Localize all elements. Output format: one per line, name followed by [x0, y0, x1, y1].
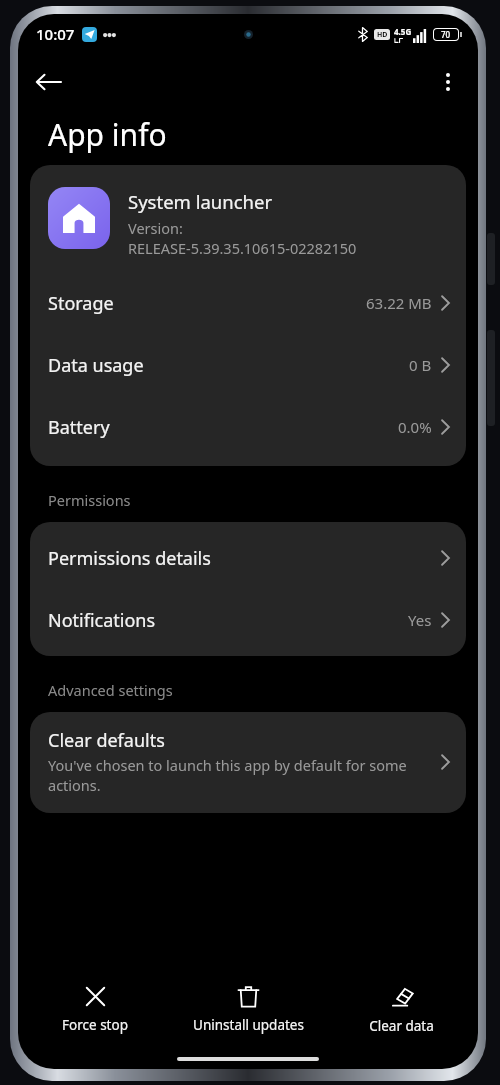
- button[interactable]: Back: [24, 58, 72, 106]
- staticText: Yes: [408, 610, 432, 630]
- button[interactable]: More options: [426, 60, 470, 104]
- button[interactable]: Data usage: [30, 334, 466, 396]
- staticText: Notifications: [48, 608, 156, 633]
- staticText: App info: [48, 114, 167, 155]
- staticText: 70: [441, 29, 451, 40]
- staticText: You've chosen to launch this app by defa…: [48, 755, 431, 795]
- button[interactable]: Uninstall updates: [172, 973, 325, 1045]
- button[interactable]: Clear defaults: [30, 712, 466, 813]
- staticText: Force stop: [62, 1016, 128, 1034]
- staticText: Clear defaults: [48, 728, 165, 753]
- staticText: System launcher: [128, 189, 273, 214]
- staticText: 63.22 MB: [366, 293, 432, 313]
- button[interactable]: Notifications: [30, 589, 466, 651]
- button[interactable]: Clear data: [325, 973, 478, 1045]
- button[interactable]: Force stop: [18, 973, 172, 1045]
- staticText: Uninstall updates: [193, 1016, 304, 1034]
- staticText: Permissions: [48, 490, 131, 510]
- staticText: Permissions details: [48, 546, 211, 571]
- staticText: 0 B: [409, 355, 432, 375]
- staticText: 4.5G: [394, 26, 412, 37]
- staticText: 10:07: [36, 24, 75, 44]
- staticText: Battery: [48, 415, 110, 440]
- button[interactable]: Permissions details: [30, 527, 466, 589]
- button[interactable]: Battery: [30, 396, 466, 458]
- staticText: 0.0%: [398, 417, 432, 437]
- button[interactable]: Storage: [30, 272, 466, 334]
- staticText: Storage: [48, 291, 114, 316]
- staticText: Data usage: [48, 353, 144, 378]
- staticText: Version:: [128, 218, 183, 238]
- staticText: Advanced settings: [48, 680, 173, 700]
- staticText: RELEASE-5.39.35.10615-02282150: [128, 238, 357, 258]
- staticText: Clear data: [369, 1017, 434, 1035]
- staticText: HD: [377, 30, 388, 40]
